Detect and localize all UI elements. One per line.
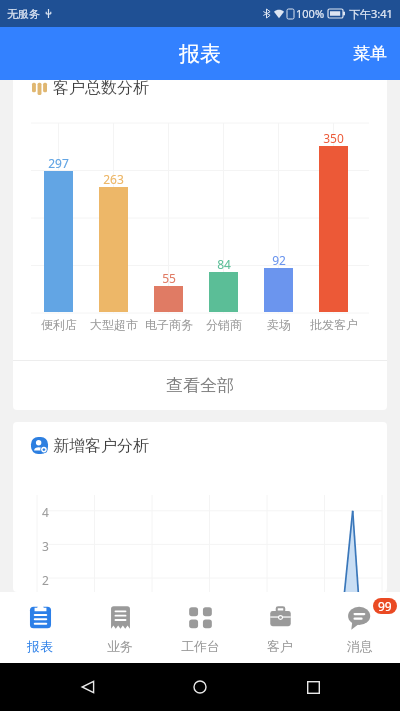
staticText: 100% [296,6,325,21]
staticText: 99 [378,598,392,614]
button[interactable]: 报表 [0,592,80,663]
staticText: 电子商务 [145,317,193,332]
staticText: 350 [323,130,344,146]
staticText: 263 [103,171,124,187]
staticText: 卖场 [267,317,291,332]
staticText: 业务 [107,638,133,654]
staticText: 297 [48,155,69,171]
staticText: 消息 [347,638,373,654]
staticText: 菜单 [353,43,387,64]
staticText: 客户 [267,638,293,654]
staticText: 客户总数分析 [53,78,149,98]
staticText: 下午3:41 [349,6,393,21]
button[interactable]: 查看全部 [13,361,387,410]
staticText: 4 [42,504,49,520]
button[interactable]: 业务 [80,592,160,663]
staticText: 批发客户 [310,317,358,332]
button[interactable]: 菜单 [340,27,400,80]
staticText: 报表 [27,638,53,654]
button[interactable]: 工作台 [160,592,240,663]
staticText: 新增客户分析 [53,436,149,456]
staticText: 84 [217,256,231,272]
staticText: 大型超市 [90,317,138,332]
staticText: 工作台 [181,638,220,654]
button[interactable]: 99 [320,592,400,663]
button[interactable]: Home [175,663,225,711]
staticText: 无服务 [7,7,40,21]
staticText: 2 [42,572,49,588]
button[interactable]: Recent apps [288,663,338,711]
button[interactable]: Back [63,663,113,711]
staticText: 便利店 [41,317,77,332]
staticText: 92 [272,252,286,268]
button[interactable]: 客户 [240,592,320,663]
staticText: 查看全部 [166,375,234,396]
staticText: 报表 [179,41,221,67]
staticText: 55 [162,270,176,286]
staticText: 3 [42,538,49,554]
staticText: 分销商 [206,317,242,332]
